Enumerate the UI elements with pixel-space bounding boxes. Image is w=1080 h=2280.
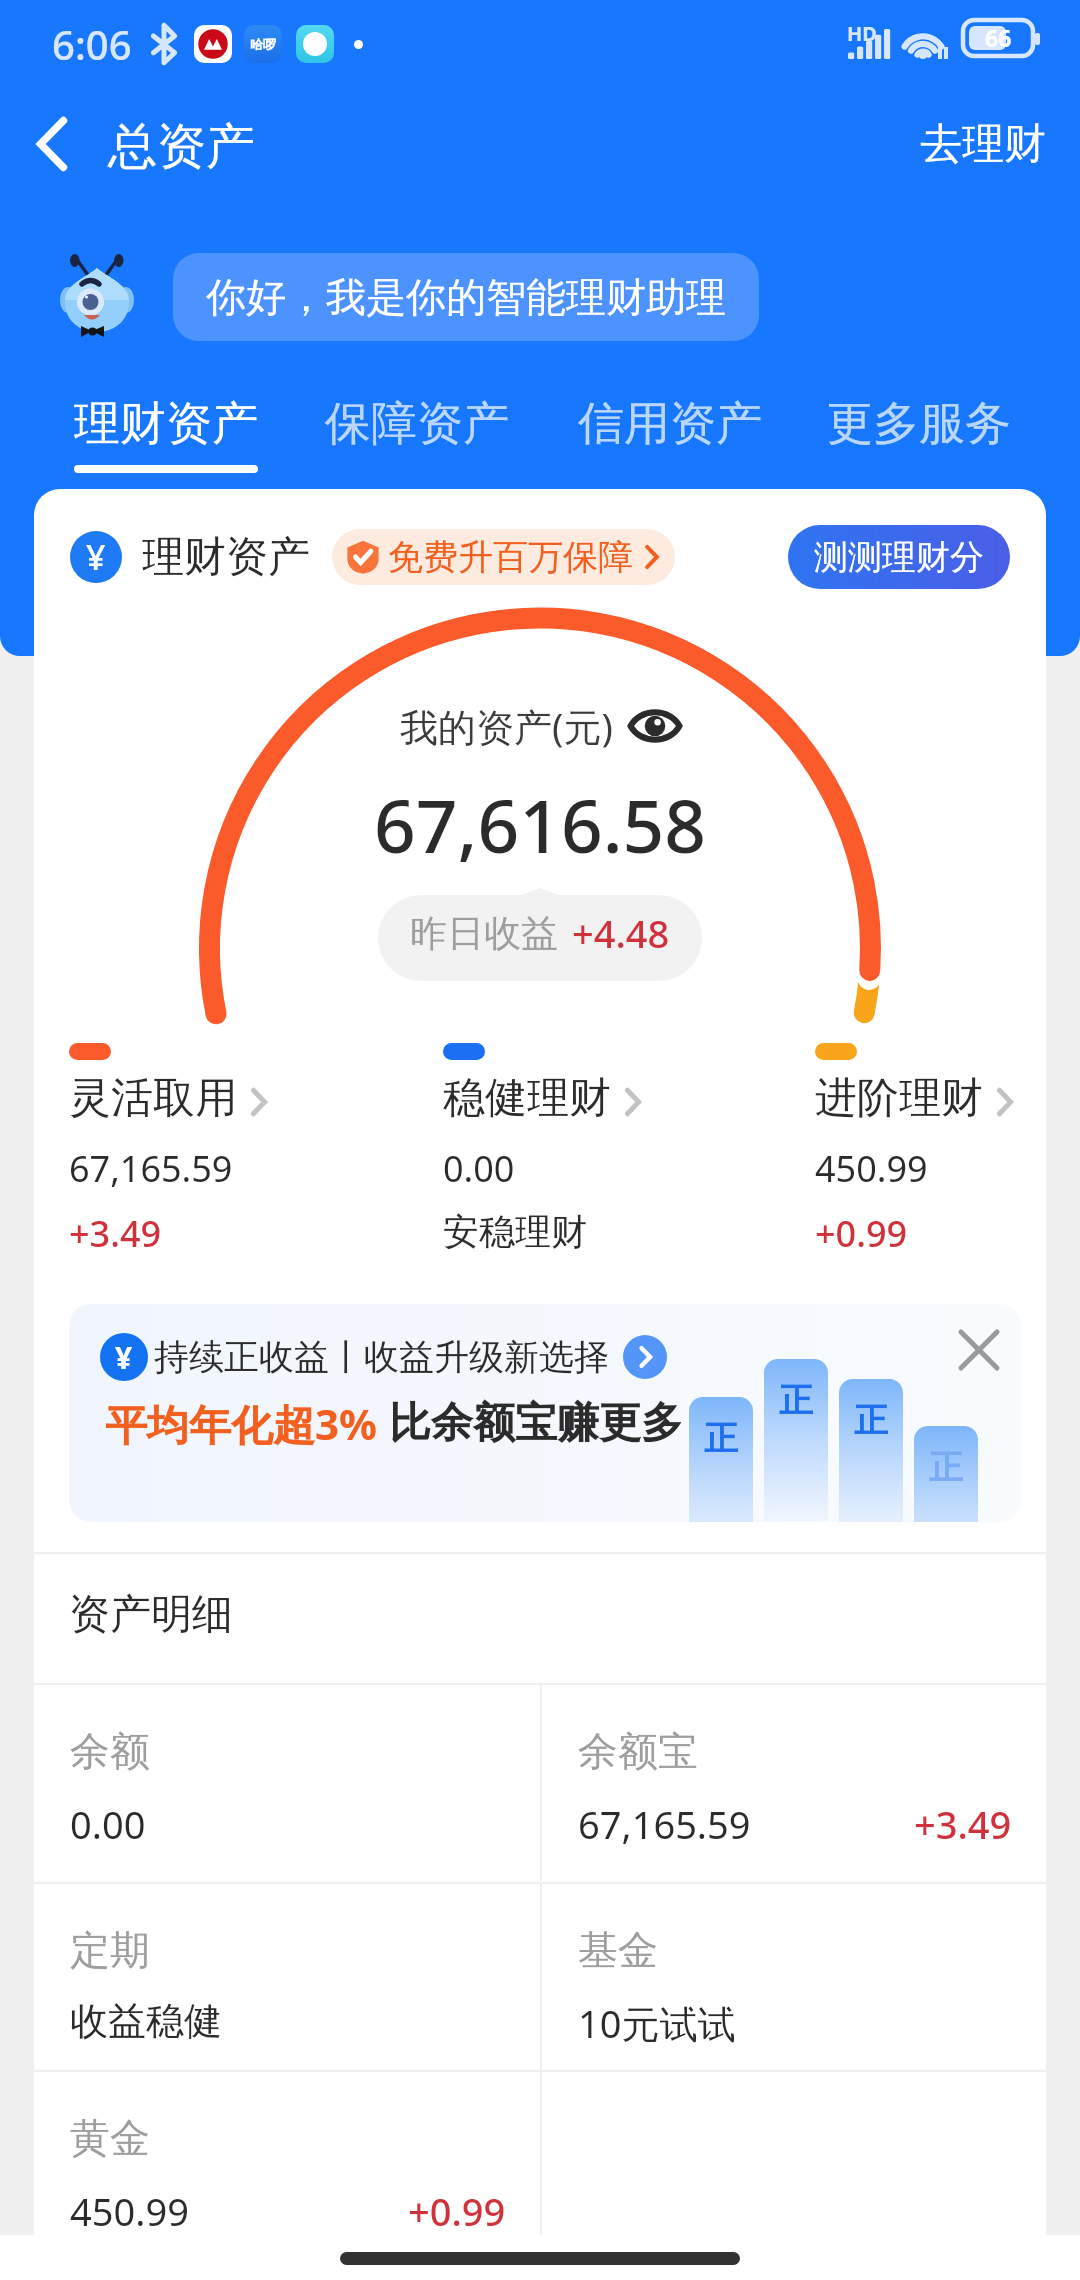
staticText: +0.99 (408, 2185, 506, 2235)
button[interactable]: Toggle amount visibility (629, 707, 681, 745)
staticText: 测测理财分 (814, 536, 984, 579)
staticText: 进阶理财 (815, 1072, 983, 1125)
staticText: ¥ (115, 1337, 133, 1378)
button[interactable]: 定期 (34, 1884, 540, 2080)
staticText: 余额 (70, 1726, 150, 1776)
staticText: 余额宝 (578, 1726, 698, 1776)
staticText: +3.49 (914, 1798, 1012, 1850)
staticText: +0.99 (815, 1209, 908, 1258)
button[interactable]: 测测理财分 (788, 525, 1010, 589)
button[interactable]: 免费升百万保障 (332, 529, 675, 585)
staticText: 0.00 (70, 1798, 146, 1850)
staticText: 定期 (70, 1925, 150, 1975)
button[interactable]: 进阶理财 (815, 1043, 1046, 1258)
staticText: 66 (985, 22, 1012, 53)
staticText: 安稳理财 (443, 1209, 587, 1254)
staticText: 正 (704, 1417, 738, 1460)
button[interactable]: 更多服务 (811, 386, 1027, 476)
staticText: 67,616.58 (34, 775, 1046, 874)
staticText: +4.48 (572, 907, 670, 959)
staticText: 昨日收益 (410, 910, 558, 957)
button[interactable]: 余额 (34, 1685, 540, 1881)
staticText: 10元试试 (578, 1997, 736, 2049)
staticText: ¥ (86, 534, 106, 580)
staticText: 信用资产 (578, 395, 762, 453)
staticText: 正 (854, 1399, 888, 1442)
button[interactable]: 稳健理财 (443, 1043, 783, 1258)
staticText: 基金 (578, 1925, 658, 1975)
staticText: 你好，我是你的智能理财助理 (206, 272, 726, 322)
staticText: 稳健理财 (443, 1072, 611, 1125)
button[interactable]: 保障资产 (309, 386, 525, 476)
staticText: 我的资产(元) (400, 700, 613, 752)
staticText: 总资产 (108, 116, 255, 178)
staticText: 正 (779, 1379, 813, 1422)
staticText: 保障资产 (325, 395, 509, 453)
staticText: 67,165.59 (69, 1144, 233, 1193)
button[interactable]: 余额宝 (542, 1685, 1046, 1881)
staticText: 免费升百万保障 (388, 535, 633, 579)
button[interactable]: 你好，我是你的智能理财助理 (173, 253, 759, 341)
staticText: 去理财 (920, 118, 1046, 171)
staticText: 资产明细 (69, 1589, 233, 1641)
button[interactable]: 灵活取用 (69, 1043, 409, 1258)
button[interactable]: 正 (69, 1304, 1021, 1522)
staticText: 0.00 (443, 1144, 515, 1193)
staticText: 6:06 (52, 17, 132, 71)
staticText: 收益稳健 (70, 1997, 222, 2045)
staticText: 比余额宝赚更多 (389, 1397, 683, 1450)
staticText: 黄金 (70, 2113, 150, 2163)
staticText: 450.99 (70, 2185, 189, 2235)
button[interactable]: Back (9, 101, 95, 187)
staticText: 理财资产 (74, 395, 258, 453)
staticText: 更多服务 (827, 395, 1011, 453)
staticText: +3.49 (69, 1209, 162, 1258)
staticText: 理财资产 (142, 531, 310, 584)
button[interactable]: 理财资产 (58, 386, 274, 476)
button[interactable]: 黄金 (34, 2072, 540, 2235)
staticText: 持续正收益丨收益升级新选择 (154, 1335, 609, 1379)
staticText: 灵活取用 (69, 1072, 237, 1125)
button[interactable]: 昨日收益 (378, 895, 702, 981)
button[interactable]: Close (947, 1318, 1011, 1382)
staticText: HD (847, 20, 877, 47)
staticText: 平均年化超3% (105, 1395, 377, 1451)
button[interactable]: 去理财 (886, 104, 1080, 185)
staticText: 正 (929, 1446, 963, 1489)
button[interactable]: 信用资产 (562, 386, 778, 476)
staticText: 哈啰 (250, 36, 276, 52)
staticText: 67,165.59 (578, 1798, 751, 1850)
button[interactable]: 基金 (542, 1884, 1046, 2080)
staticText: 450.99 (815, 1144, 928, 1193)
